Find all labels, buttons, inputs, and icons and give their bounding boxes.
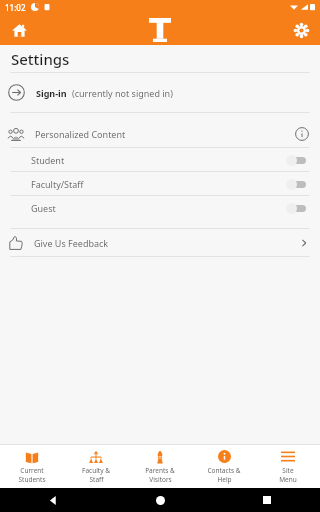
- staticText: (currently not signed in): [72, 87, 173, 99]
- staticText: Give Us Feedback: [34, 237, 109, 249]
- staticText: Student: [31, 154, 65, 166]
- staticText: Settings: [11, 49, 70, 69]
- staticText: Help: [217, 475, 232, 484]
- staticText: Personalized Content: [35, 128, 126, 140]
- staticText: Guest: [31, 202, 56, 214]
- button[interactable]: Current: [0, 445, 64, 488]
- button[interactable]: Give Us Feedback: [0, 229, 320, 256]
- button[interactable]: Faculty &: [64, 445, 128, 488]
- button[interactable]: Guest: [0, 196, 320, 219]
- button[interactable]: Parents &: [128, 445, 192, 488]
- staticText: Faculty/Staff: [31, 178, 84, 190]
- button[interactable]: Faculty/Staff: [0, 172, 320, 195]
- staticText: Staff: [89, 475, 104, 484]
- button[interactable]: Settings: [288, 17, 314, 43]
- button[interactable]: Contacts &: [192, 445, 256, 488]
- staticText: Students: [18, 475, 46, 484]
- staticText: Menu: [279, 475, 297, 484]
- staticText: Current: [20, 466, 44, 475]
- button[interactable]: Recent apps: [256, 489, 278, 511]
- staticText: 11:02: [5, 2, 26, 13]
- staticText: Parents &: [145, 466, 175, 475]
- staticText: Visitors: [149, 475, 172, 484]
- button[interactable]: Home: [6, 17, 32, 43]
- button[interactable]: Sign-in: [0, 73, 320, 112]
- button[interactable]: Student: [0, 148, 320, 171]
- staticText: Faculty &: [82, 466, 110, 475]
- button[interactable]: Home: [149, 489, 171, 511]
- button[interactable]: Information: [293, 125, 311, 143]
- button[interactable]: Site: [256, 445, 320, 488]
- staticText: Sign-in: [36, 87, 67, 99]
- staticText: Contacts &: [207, 466, 241, 475]
- staticText: Site: [282, 466, 294, 475]
- button[interactable]: Back: [42, 489, 64, 511]
